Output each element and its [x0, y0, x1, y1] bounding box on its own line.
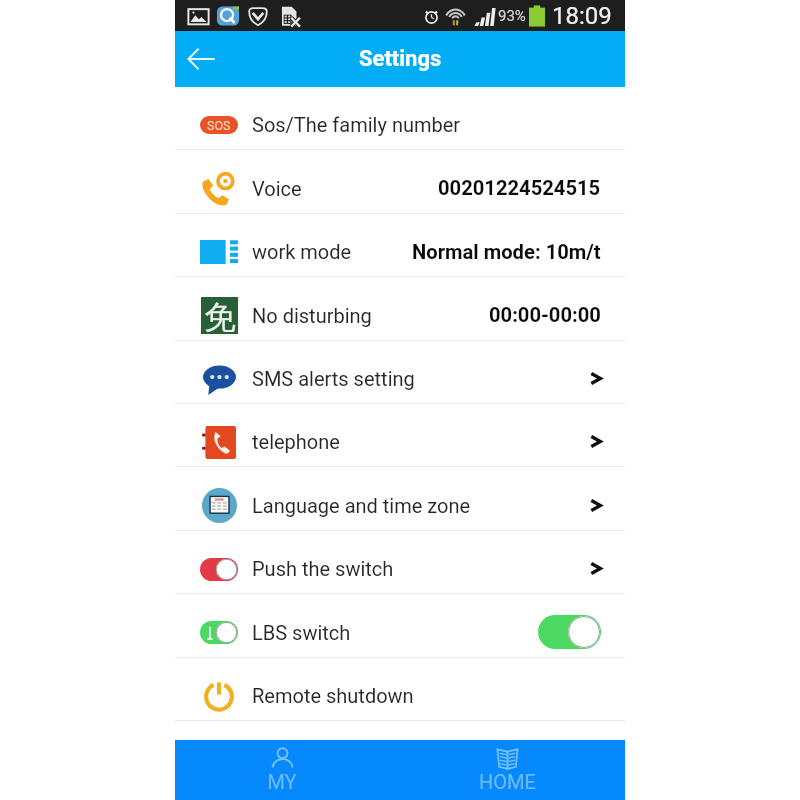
- button[interactable]: LBS switch: [175, 594, 625, 658]
- button[interactable]: Language and time zone: [175, 467, 625, 531]
- staticText: Sos/The family number: [252, 113, 461, 136]
- staticText: Normal mode: 10m/t: [412, 240, 601, 264]
- button[interactable]: Push the switch: [175, 531, 625, 594]
- staticText: 免: [204, 297, 236, 334]
- button[interactable]: 免: [175, 277, 625, 341]
- staticText: Push the switch: [252, 557, 394, 580]
- staticText: Voice: [252, 177, 302, 200]
- staticText: work mode: [252, 240, 352, 263]
- staticText: Language and time zone: [252, 494, 471, 517]
- staticText: No disturbing: [252, 304, 372, 327]
- staticText: 18:09: [552, 2, 612, 30]
- staticText: SOS: [207, 118, 231, 133]
- button[interactable]: Back: [177, 35, 225, 83]
- button[interactable]: MY: [175, 740, 400, 800]
- staticText: Remote shutdown: [252, 684, 414, 707]
- button[interactable]: SOS: [175, 87, 625, 150]
- staticText: 93%: [498, 7, 526, 25]
- staticText: 00:00-00:00: [489, 303, 601, 327]
- button[interactable]: HOME: [400, 740, 625, 800]
- button[interactable]: Remote shutdown: [175, 658, 625, 721]
- staticText: Settings: [359, 46, 442, 72]
- staticText: telephone: [252, 430, 340, 453]
- staticText: HOME: [479, 770, 536, 793]
- button[interactable]: LBS switch toggle: [538, 615, 601, 649]
- staticText: MY: [267, 770, 297, 793]
- button[interactable]: SMS alerts setting: [175, 341, 625, 404]
- staticText: LBS switch: [252, 621, 351, 644]
- button[interactable]: telephone: [175, 404, 625, 467]
- button[interactable]: Voice: [175, 150, 625, 214]
- staticText: 00201224524515: [438, 176, 601, 200]
- button[interactable]: work mode: [175, 214, 625, 277]
- staticText: SMS alerts setting: [252, 367, 415, 390]
